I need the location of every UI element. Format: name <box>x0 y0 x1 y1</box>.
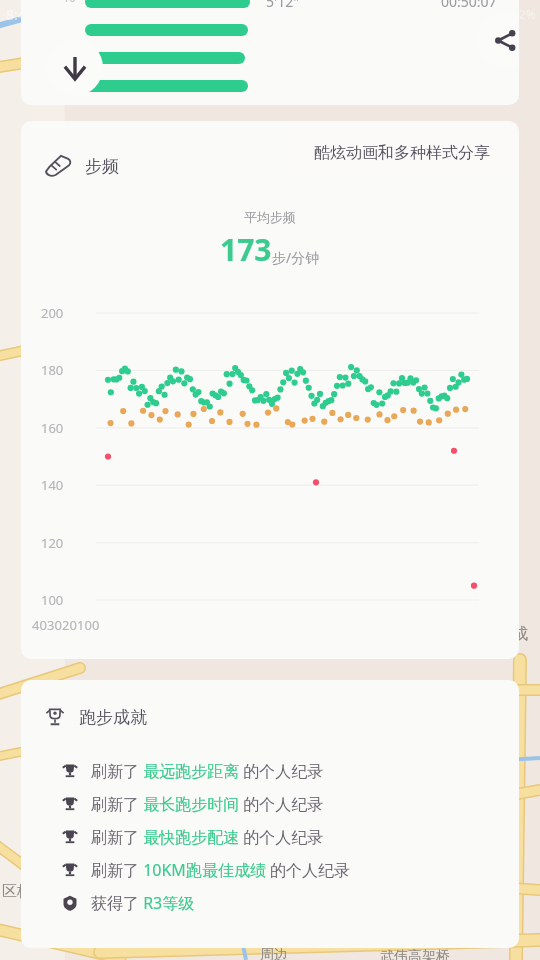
button[interactable]: 步频 <box>21 121 519 659</box>
button[interactable]: Share <box>477 12 519 68</box>
staticText: 步/分钟 <box>272 248 320 267</box>
staticText: 30 <box>47 616 62 634</box>
staticText: 刷新了 10KM跑最佳成绩 的个人纪录 <box>91 859 351 881</box>
button[interactable]: Download <box>46 39 103 96</box>
staticText: 0.04K/s <box>279 6 321 22</box>
staticText: 10 <box>77 616 92 634</box>
staticText: 20 <box>62 616 77 634</box>
button[interactable]: 刷新了 10KM跑最佳成绩 的个人纪录 <box>61 853 519 886</box>
staticText: 跑步成就 <box>79 707 147 728</box>
staticText: 160 <box>41 419 64 437</box>
staticText: 成 <box>512 624 528 644</box>
staticText: 0 <box>92 616 100 634</box>
button[interactable]: 跑步成就 <box>21 680 519 948</box>
staticText: 刷新了 最快跑步配速 的个人纪录 <box>91 826 324 848</box>
staticText: 酷炫动画和多种样式分享 <box>314 143 490 163</box>
staticText: 10 <box>63 0 76 5</box>
staticText: 周边 <box>260 946 288 960</box>
staticText: 8:44 <box>6 5 34 24</box>
staticText: 92% <box>512 6 536 22</box>
button[interactable]: 获得了 R3等级 <box>61 886 519 919</box>
staticText: 武伟高架桥 <box>380 948 450 960</box>
staticText: 140 <box>41 476 64 494</box>
staticText: 获得了 R3等级 <box>91 892 195 914</box>
button[interactable]: 刷新了 最快跑步配速 的个人纪录 <box>61 820 519 853</box>
staticText: 刷新了 最远跑步距离 的个人纪录 <box>91 760 324 782</box>
staticText: 173 <box>220 229 272 270</box>
staticText: 刷新了 最长跑步时间 的个人纪录 <box>91 793 324 815</box>
staticText: 40 <box>32 616 47 634</box>
staticText: 00:50:07 <box>441 0 497 11</box>
staticText: 区杭 <box>2 882 32 901</box>
staticText: 200 <box>41 304 64 322</box>
staticText: 5'12" <box>266 0 299 11</box>
staticText: 120 <box>41 534 64 552</box>
staticText: 平均步频 <box>244 209 296 225</box>
staticText: 100 <box>41 591 64 609</box>
button[interactable]: 刷新了 最远跑步距离 的个人纪录 <box>61 754 519 787</box>
button[interactable]: 酷炫动画和多种样式分享 <box>289 130 515 176</box>
staticText: 180 <box>41 361 64 379</box>
button[interactable]: 刷新了 最长跑步时间 的个人纪录 <box>61 787 519 820</box>
staticText: 步频 <box>85 156 119 177</box>
